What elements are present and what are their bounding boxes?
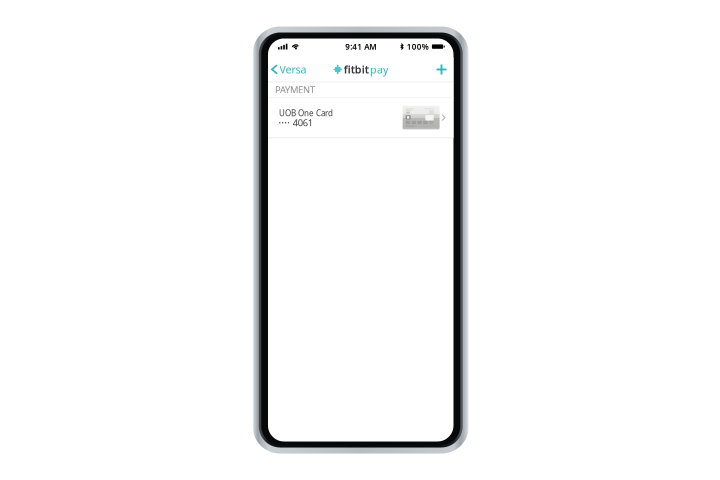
staticText: UOB One Card [279, 108, 333, 118]
staticText: pay [370, 62, 388, 77]
button[interactable]: Versa [269, 58, 308, 80]
staticText: fitbit [344, 62, 369, 77]
staticText: 4061 [293, 117, 313, 129]
staticText: 100% [407, 41, 429, 52]
staticText: Versa [280, 62, 307, 77]
button[interactable]: Add payment card [433, 58, 449, 80]
staticText: 9:41 AM [345, 41, 376, 52]
button[interactable]: UOB One Card [268, 98, 453, 137]
staticText: PAYMENT [275, 83, 315, 96]
